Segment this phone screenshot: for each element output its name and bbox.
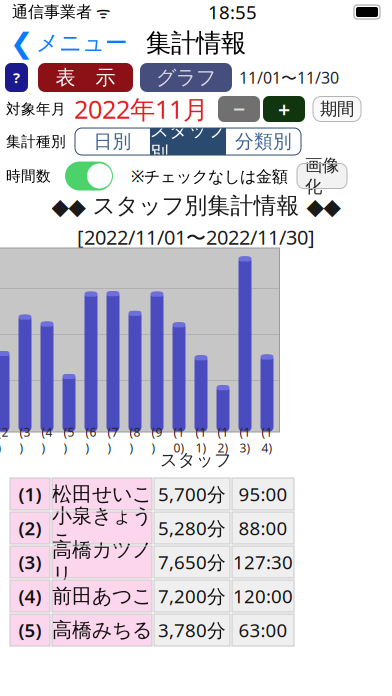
staticText: (3): [19, 424, 30, 456]
button[interactable]: (5): [0, 614, 392, 646]
staticText: 127:30: [233, 550, 293, 574]
staticText: −: [233, 95, 245, 123]
staticText: (9): [151, 424, 162, 456]
staticText: (13): [239, 424, 250, 456]
staticText: (11): [195, 424, 206, 456]
staticText: ❮: [10, 27, 33, 59]
staticText: ?: [13, 68, 20, 87]
staticText: 通信事業者: [12, 2, 92, 22]
staticText: メニュー: [36, 29, 128, 57]
staticText: 松田せいこ: [52, 482, 152, 506]
staticText: 95:00: [238, 482, 287, 506]
staticText: 88:00: [238, 516, 287, 540]
staticText: 前田あつこ: [52, 584, 152, 608]
staticText: スタッフ: [160, 449, 232, 471]
button[interactable]: (1): [0, 478, 392, 510]
staticText: 5,700分: [158, 482, 226, 506]
staticText: 120:00: [233, 584, 293, 608]
staticText: 日別: [93, 130, 131, 153]
staticText: (10): [173, 424, 184, 456]
staticText: [2022/11/01〜2022/11/30]: [77, 224, 315, 250]
staticText: グラフ: [156, 65, 216, 90]
staticText: (14): [261, 424, 272, 456]
staticText: (2): [18, 516, 41, 540]
button[interactable]: 分類別: [226, 128, 301, 155]
button[interactable]: グラフ: [140, 63, 232, 92]
staticText: 画像化: [305, 155, 339, 197]
staticText: (5): [63, 424, 74, 456]
staticText: ◆◆ スタッフ別集計情報 ◆◆: [51, 192, 340, 219]
staticText: 表 示: [55, 65, 115, 90]
button[interactable]: 次の月: [263, 96, 305, 122]
staticText: (8): [129, 424, 140, 456]
staticText: 7,200分: [158, 584, 226, 608]
button[interactable]: (4): [0, 580, 392, 612]
staticText: (3): [18, 550, 41, 574]
button[interactable]: (2): [0, 512, 392, 544]
button[interactable]: ヘルプ: [5, 63, 28, 92]
staticText: 3,780分: [158, 618, 226, 642]
staticText: スタッフ別: [150, 119, 226, 164]
staticText: 高橋カツノリ: [52, 537, 152, 586]
button[interactable]: 画像化: [297, 163, 347, 188]
button[interactable]: 前の月: [218, 96, 260, 122]
staticText: 2022年11月: [74, 92, 208, 126]
staticText: 小泉きょうこ: [52, 503, 152, 552]
staticText: (1): [18, 482, 41, 506]
staticText: 分類別: [235, 130, 292, 153]
button[interactable]: 日別: [75, 128, 150, 155]
staticText: 7,650分: [158, 550, 226, 574]
button[interactable]: スタッフ別: [150, 128, 226, 155]
button[interactable]: 時間数表示: [65, 161, 113, 190]
staticText: (5): [18, 618, 41, 642]
button[interactable]: ❮: [0, 24, 138, 62]
staticText: ※チェックなしは金額: [131, 165, 288, 187]
staticText: 期間: [320, 98, 354, 120]
staticText: 集計種別: [6, 132, 66, 150]
staticText: (2): [0, 424, 8, 456]
button[interactable]: 表 示: [38, 63, 133, 92]
staticText: (12): [217, 424, 228, 456]
button[interactable]: (3): [0, 546, 392, 578]
staticText: (6): [85, 424, 96, 456]
staticText: (7): [107, 424, 118, 456]
staticText: ᯤ: [92, 1, 111, 23]
staticText: 63:00: [238, 618, 287, 642]
staticText: (4): [18, 584, 41, 608]
staticText: 5,280分: [158, 516, 226, 540]
staticText: 11/01〜11/30: [239, 67, 339, 88]
staticText: 集計情報: [146, 27, 246, 58]
staticText: (4): [41, 424, 52, 456]
staticText: 対象年月: [6, 100, 66, 118]
staticText: 時間数: [6, 167, 51, 185]
staticText: 高橋みちる: [52, 618, 152, 642]
staticText: 18:55: [208, 0, 257, 24]
button[interactable]: 期間: [313, 96, 361, 121]
staticText: +: [278, 95, 290, 123]
